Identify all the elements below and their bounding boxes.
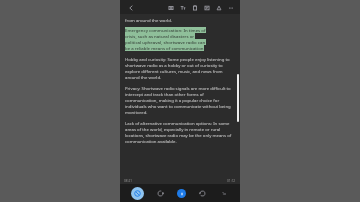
button[interactable]: Back <box>125 2 136 13</box>
button[interactable]: Rewind <box>155 188 166 199</box>
staticText: Hobby and curiosity: Some people enjoy l… <box>125 56 234 80</box>
button[interactable]: Highlight <box>166 3 175 12</box>
button[interactable]: More options <box>226 3 235 12</box>
button[interactable]: Text size <box>178 3 187 12</box>
staticText: from around the world. <box>125 17 173 23</box>
staticText: Emergency communication: In times of <box>125 27 206 33</box>
staticText: crisis, such as natural disasters or <box>125 33 195 39</box>
button[interactable]: Copy <box>190 3 199 12</box>
button[interactable]: Playback speed <box>219 188 229 198</box>
staticText: Lack of alternative communication option… <box>125 120 234 144</box>
button[interactable]: Emergency communication: In times of <box>125 27 206 33</box>
button[interactable]: crisis, such as natural disasters or <box>125 33 195 39</box>
button[interactable]: Listen <box>131 187 144 200</box>
button[interactable]: Translate <box>214 3 223 12</box>
staticText: Privacy: Shortwave radio signals are mor… <box>125 85 234 115</box>
button[interactable]: Note <box>202 3 211 12</box>
staticText: 08:21 <box>124 179 133 183</box>
button[interactable]: Play <box>177 189 186 198</box>
button[interactable]: Forward <box>197 188 208 199</box>
staticText: be a reliable means of communication <box>125 45 204 51</box>
staticText: 1x <box>222 191 226 196</box>
staticText: political upheaval, shortwave radio can <box>125 39 206 45</box>
button[interactable]: political upheaval, shortwave radio can <box>125 39 206 45</box>
button[interactable]: be a reliable means of communication <box>125 45 204 51</box>
staticText: 01:12 <box>227 179 236 183</box>
